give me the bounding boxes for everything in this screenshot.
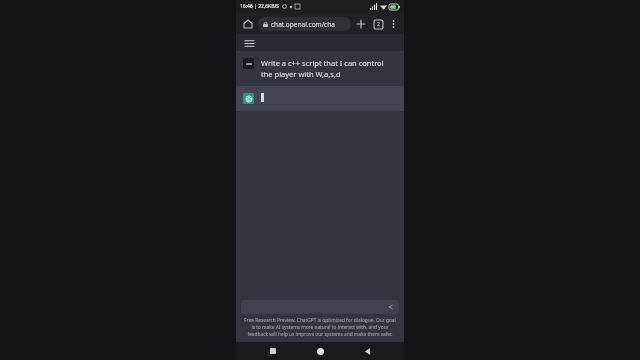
button[interactable]: Send message (387, 303, 395, 311)
staticText: 2 (377, 21, 380, 28)
button[interactable]: Recent apps (263, 342, 283, 360)
button[interactable]: Tabs (371, 17, 385, 31)
staticText: Free Research Preview. ChatGPT is optimi… (242, 317, 398, 338)
button[interactable]: Home (241, 17, 255, 31)
button[interactable]: More options (387, 18, 399, 30)
staticText: 16:46 | 22,6KB/S (240, 3, 280, 10)
button[interactable]: Back (357, 342, 377, 360)
staticText: Write a c++ script that I can control th… (261, 58, 396, 79)
button[interactable]: New tab (354, 17, 368, 31)
button[interactable]: chat.openai.com/cha (258, 17, 351, 31)
staticText: chat.openai.com/cha (271, 20, 335, 29)
button[interactable]: Write a c++ script that I can control th… (236, 51, 404, 86)
button[interactable]: Home (310, 342, 330, 360)
button[interactable] (236, 86, 404, 111)
button[interactable]: Send message (241, 300, 399, 314)
button[interactable]: Menu (242, 36, 256, 50)
